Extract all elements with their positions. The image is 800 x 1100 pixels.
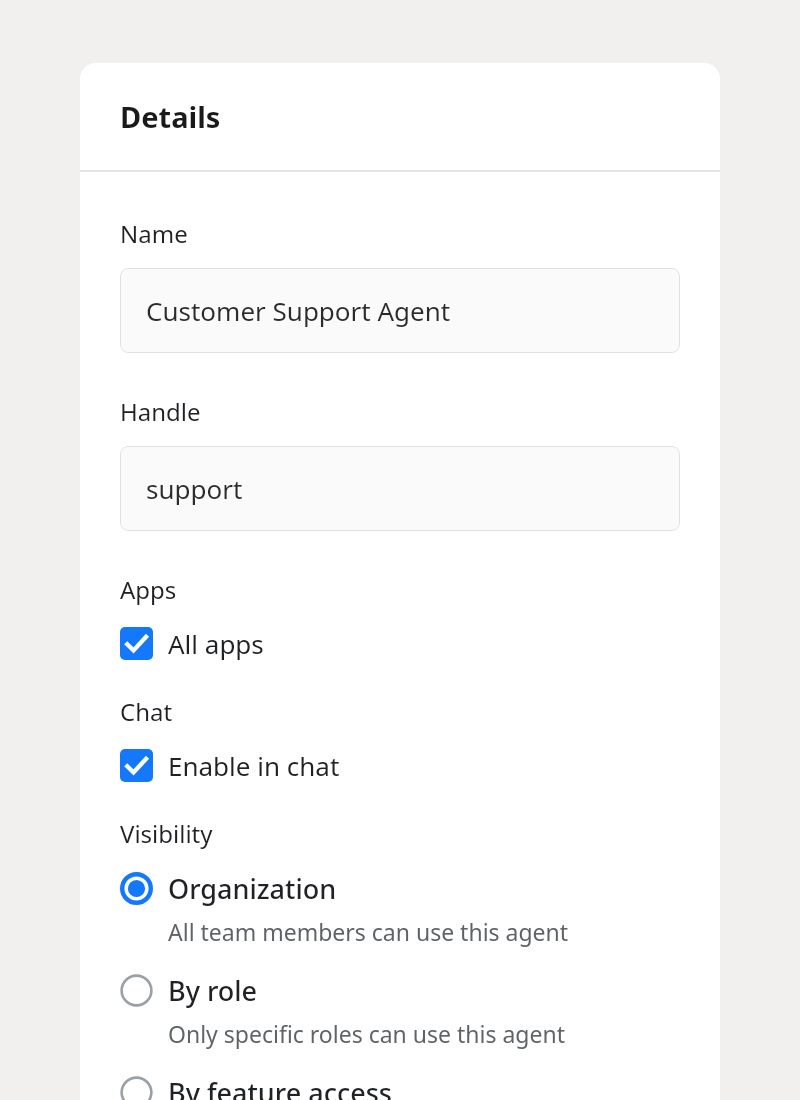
staticText: Handle [120, 395, 201, 428]
staticText: support [146, 471, 243, 506]
button[interactable]: support [120, 446, 680, 531]
staticText: Enable in chat [168, 748, 340, 783]
staticText: Chat [120, 695, 173, 728]
staticText: Organization [168, 870, 337, 907]
staticText: All team members can use this agent [168, 916, 569, 947]
staticText: Details [120, 97, 221, 136]
staticText: Visibility [120, 817, 213, 850]
staticText: All apps [168, 626, 264, 661]
button[interactable]: By feature access [120, 1074, 720, 1100]
staticText: By role [168, 972, 258, 1009]
staticText: Only specific roles can use this agent [168, 1018, 565, 1049]
button[interactable]: All apps [120, 626, 720, 661]
button[interactable]: Enable in chat [120, 748, 720, 783]
button[interactable]: Customer Support Agent [120, 268, 680, 353]
button[interactable]: Organization [120, 870, 720, 947]
staticText: Apps [120, 573, 177, 606]
staticText: By feature access [168, 1074, 392, 1100]
button[interactable]: By role [120, 972, 720, 1049]
staticText: Name [120, 217, 188, 250]
staticText: Customer Support Agent [146, 293, 451, 328]
